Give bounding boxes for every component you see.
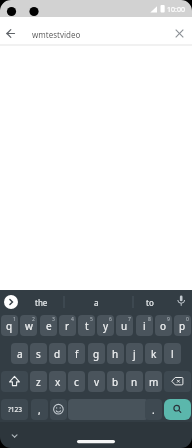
staticText: r — [65, 319, 70, 333]
staticText: l — [171, 347, 174, 361]
staticText: s — [36, 347, 41, 361]
staticText: wmtestvideo — [32, 29, 81, 40]
staticText: m — [149, 375, 159, 389]
button[interactable]: m — [145, 371, 162, 392]
staticText: t — [85, 319, 89, 333]
button[interactable] — [1, 371, 28, 392]
staticText: a — [17, 347, 23, 361]
staticText: f — [75, 347, 79, 361]
button[interactable]: r — [59, 315, 76, 336]
staticText: the — [35, 297, 48, 308]
button[interactable] — [164, 399, 191, 420]
button[interactable]: to — [130, 293, 170, 311]
staticText: x — [55, 375, 61, 389]
button[interactable]: s — [30, 343, 47, 364]
staticText: o — [160, 319, 167, 333]
button[interactable] — [0, 17, 192, 45]
button[interactable]: a — [11, 343, 28, 364]
button[interactable]: k — [145, 343, 162, 364]
button[interactable]: b — [107, 371, 124, 392]
staticText: ?123 — [8, 405, 22, 414]
staticText: q — [6, 319, 13, 333]
button[interactable]: v — [88, 371, 105, 392]
button[interactable]: , — [31, 399, 48, 420]
button[interactable]: t — [78, 315, 95, 336]
button[interactable]: h — [107, 343, 124, 364]
button[interactable]: n — [126, 371, 143, 392]
staticText: 10:00 — [167, 5, 185, 15]
button[interactable]: y — [97, 315, 114, 336]
staticText: i — [143, 319, 146, 333]
staticText: , — [38, 403, 41, 417]
button[interactable] — [4, 295, 18, 309]
button[interactable]: a — [66, 293, 126, 311]
button[interactable]: c — [68, 371, 85, 392]
staticText: 3 — [52, 316, 55, 323]
staticText: w — [25, 319, 33, 333]
staticText: 1 — [13, 316, 16, 323]
button[interactable]: o — [155, 315, 172, 336]
staticText: y — [103, 319, 109, 333]
button[interactable]: z — [30, 371, 47, 392]
button[interactable]: x — [49, 371, 66, 392]
staticText: v — [94, 375, 100, 389]
staticText: b — [112, 375, 119, 389]
staticText: e — [46, 319, 52, 333]
button[interactable] — [164, 371, 191, 392]
staticText: h — [112, 347, 119, 361]
staticText: a — [94, 297, 99, 308]
button[interactable]: d — [49, 343, 66, 364]
button[interactable]: l — [164, 343, 181, 364]
staticText: 8 — [148, 316, 151, 323]
staticText: g — [93, 347, 100, 361]
button[interactable]: . — [145, 399, 162, 420]
staticText: . — [152, 403, 155, 417]
button[interactable]: i — [136, 315, 153, 336]
button[interactable]: e — [40, 315, 57, 336]
staticText: 5 — [90, 316, 93, 323]
staticText: 4 — [71, 316, 74, 323]
staticText: k — [151, 347, 157, 361]
button[interactable]: j — [126, 343, 143, 364]
button[interactable]: p — [174, 315, 191, 336]
staticText: d — [54, 347, 61, 361]
staticText: 0 — [186, 316, 189, 323]
button[interactable]: w — [20, 315, 37, 336]
staticText: u — [121, 319, 128, 333]
button[interactable]: f — [68, 343, 85, 364]
staticText: to — [146, 297, 154, 308]
staticText: n — [131, 375, 138, 389]
staticText: 9 — [167, 316, 170, 323]
button[interactable] — [50, 399, 67, 420]
button[interactable]: the — [20, 293, 62, 311]
button[interactable]: g — [88, 343, 105, 364]
button[interactable]: q — [1, 315, 18, 336]
button[interactable]: u — [116, 315, 133, 336]
staticText: 7 — [128, 316, 131, 323]
button[interactable]: ?123 — [1, 399, 28, 420]
staticText: z — [36, 375, 41, 389]
staticText: 2 — [32, 316, 35, 323]
staticText: c — [74, 375, 79, 389]
staticText: j — [133, 347, 136, 361]
staticText: 6 — [109, 316, 112, 323]
staticText: p — [179, 319, 186, 333]
